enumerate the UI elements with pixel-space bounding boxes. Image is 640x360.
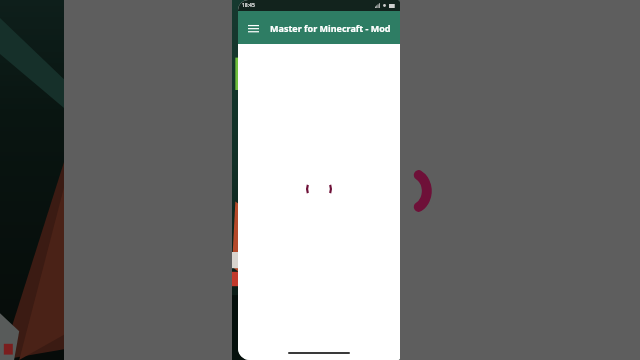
button[interactable]: Home gesture bar [288,352,350,354]
button[interactable]: Open navigation menu [243,18,263,38]
staticText: Master for Minecraft - Mod Launcher [270,22,400,34]
staticText: 18:45 [242,2,255,9]
